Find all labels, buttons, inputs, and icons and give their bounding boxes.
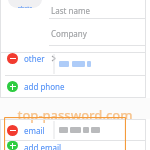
staticText: photo <box>18 5 33 8</box>
staticText: Last name <box>51 5 90 16</box>
staticText: Company <box>51 28 87 39</box>
other: Add <box>7 81 18 92</box>
button[interactable]: Add <box>0 141 150 150</box>
button[interactable]: Add <box>0 76 150 97</box>
staticText: top-password.com <box>17 106 133 124</box>
other: Add <box>7 141 18 150</box>
other: Remove <box>7 53 18 64</box>
other: Highlighted email section <box>4 117 126 150</box>
staticText: add email <box>24 142 62 150</box>
button[interactable]: Last name <box>0 0 150 18</box>
button[interactable]: photo <box>8 0 42 8</box>
button[interactable]: Remove <box>0 53 150 75</box>
staticText: email <box>24 125 45 136</box>
button[interactable]: Remove <box>0 120 150 140</box>
staticText: add phone <box>24 81 65 92</box>
staticText: other <box>24 53 45 64</box>
button[interactable]: Company <box>0 19 150 45</box>
other: Remove <box>7 125 18 136</box>
